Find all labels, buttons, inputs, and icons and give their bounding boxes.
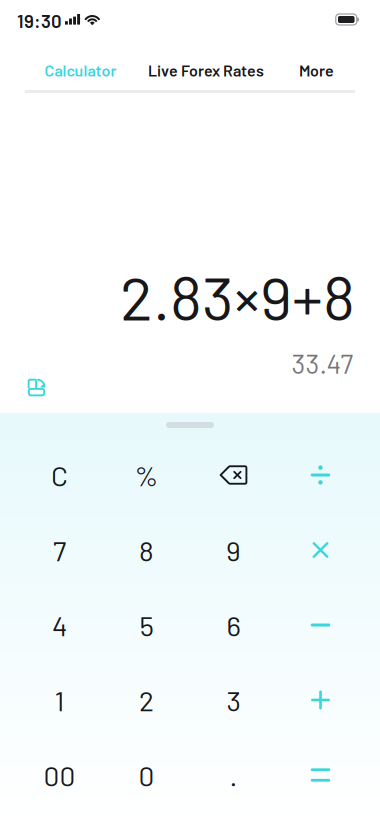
staticText: . [229,758,237,792]
button[interactable]: 00 [16,737,103,812]
staticText: 00 [43,758,75,792]
button[interactable]: 8 [103,512,190,587]
staticText: 1 [54,683,64,717]
button[interactable]: 0 [103,737,190,812]
staticText: 2.83×9+8 [120,259,355,333]
button[interactable]: 4 [16,587,103,662]
button[interactable]: Live Forex Rates [131,47,281,93]
button[interactable]: Subtract [277,587,364,662]
button[interactable]: 6 [190,587,277,662]
button[interactable]: 1 [16,662,103,737]
button[interactable]: 9 [190,512,277,587]
staticText: 7 [53,533,66,567]
staticText: Live Forex Rates [148,60,264,80]
staticText: C [51,458,68,492]
staticText: More [299,60,334,80]
button[interactable]: Delete [190,437,277,512]
button[interactable]: % [103,437,190,512]
staticText: 4 [52,608,67,642]
staticText: 6 [226,608,240,642]
staticText: Calculator [44,60,116,80]
button[interactable]: More [266,47,366,93]
button[interactable]: Equals [277,737,364,812]
staticText: 0 [138,758,154,792]
button[interactable]: Multiply [277,512,364,587]
button[interactable]: Save to history [20,372,52,402]
button[interactable]: Divide [277,437,364,512]
button[interactable]: 5 [103,587,190,662]
staticText: 5 [139,608,153,642]
button[interactable]: 7 [16,512,103,587]
staticText: 9 [226,533,241,567]
staticText: 8 [139,533,154,567]
button[interactable]: C [16,437,103,512]
button[interactable]: Add [277,662,364,737]
button[interactable]: . [190,737,277,812]
staticText: 3 [226,683,240,717]
button[interactable]: 3 [190,662,277,737]
staticText: 19:30 [17,9,62,32]
staticText: % [134,458,158,492]
staticText: 33.47 [291,347,353,379]
staticText: 2 [139,683,154,717]
button[interactable]: 2 [103,662,190,737]
button[interactable]: Calculator [20,47,140,93]
